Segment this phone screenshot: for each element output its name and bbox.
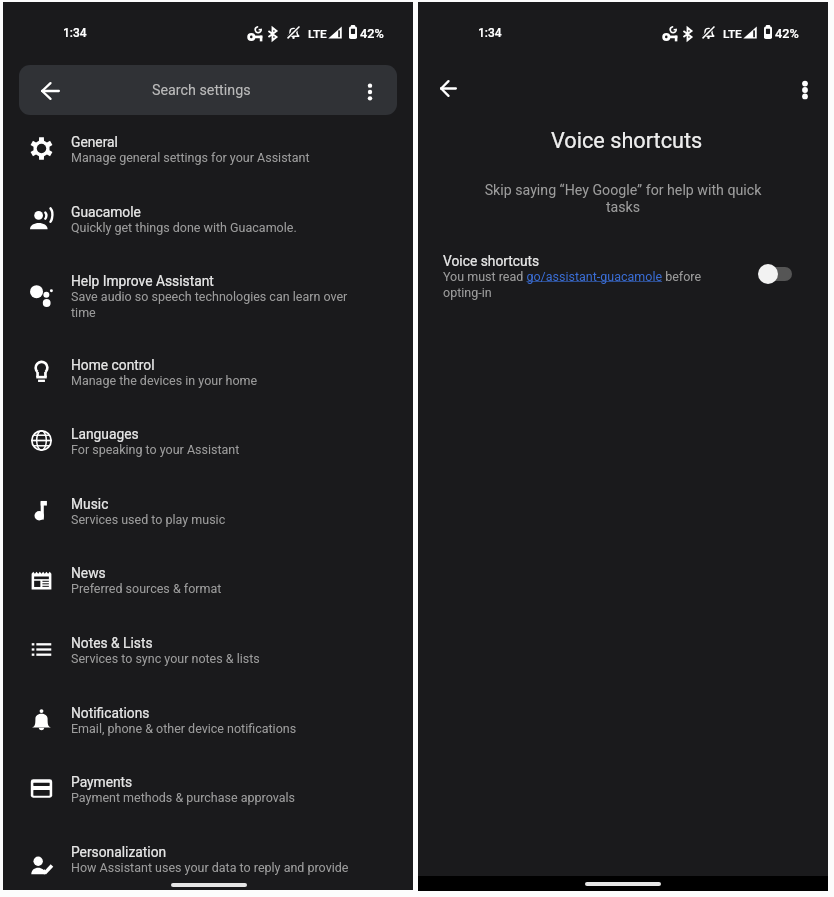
button[interactable]: Music <box>3 494 413 564</box>
staticText: Search settings <box>152 82 251 99</box>
button[interactable]: News <box>3 563 413 633</box>
staticText: Voice shortcuts <box>551 128 703 153</box>
staticText: News <box>71 565 106 581</box>
staticText: General <box>71 134 118 150</box>
staticText: LTE <box>723 27 742 41</box>
staticText: Guacamole <box>71 204 141 220</box>
staticText: 1:34 <box>478 26 502 40</box>
button[interactable]: Personalization <box>3 842 413 897</box>
staticText: Payment methods & purchase approvals <box>71 790 295 805</box>
staticText: Notifications <box>71 705 150 721</box>
button[interactable]: More options <box>341 65 397 115</box>
staticText: For speaking to your Assistant <box>71 442 240 457</box>
staticText: How Assistant uses your data to reply an… <box>71 860 349 875</box>
button[interactable]: General <box>3 132 413 202</box>
staticText: Manage general settings for your Assista… <box>71 150 310 165</box>
staticText: Save audio so speech technologies can le… <box>71 289 359 321</box>
staticText: Voice shortcuts <box>443 253 540 269</box>
staticText: Quickly get things done with Guacamole. <box>71 220 297 235</box>
staticText: Services to sync your notes & lists <box>71 651 260 666</box>
staticText: Home control <box>71 357 155 373</box>
button[interactable]: Back <box>418 58 478 118</box>
button[interactable]: Voice shortcuts <box>418 251 828 313</box>
button[interactable]: Toggle voice shortcuts <box>748 246 804 302</box>
staticText: Skip saying “Hey Google” for help with q… <box>473 182 773 216</box>
staticText: Services used to play music <box>71 512 226 527</box>
button[interactable]: Payments <box>3 772 413 842</box>
button[interactable]: Notes & Lists <box>3 633 413 703</box>
button[interactable]: Help Improve Assistant <box>3 271 413 354</box>
button[interactable]: More options <box>775 58 834 118</box>
button[interactable]: Guacamole <box>3 202 413 272</box>
button[interactable]: Notifications <box>3 703 413 773</box>
staticText: You must read go/assistant-guacamole bef… <box>443 269 738 301</box>
staticText: Music <box>71 496 109 512</box>
button[interactable]: Home control <box>3 355 413 425</box>
staticText: LTE <box>308 27 327 41</box>
staticText: Payments <box>71 774 133 790</box>
staticText: Languages <box>71 426 139 442</box>
button[interactable]: Back <box>19 65 85 115</box>
staticText: 42% <box>775 26 799 41</box>
staticText: Preferred sources & format <box>71 581 222 596</box>
button[interactable]: Back <box>19 65 397 115</box>
staticText: Personalization <box>71 844 167 860</box>
staticText: Email, phone & other device notification… <box>71 721 297 736</box>
staticText: 42% <box>360 26 384 41</box>
staticText: 1:34 <box>63 26 87 40</box>
staticText: Help Improve Assistant <box>71 273 214 289</box>
staticText: Manage the devices in your home <box>71 373 258 388</box>
button[interactable]: Languages <box>3 424 413 494</box>
staticText: Notes & Lists <box>71 635 153 651</box>
